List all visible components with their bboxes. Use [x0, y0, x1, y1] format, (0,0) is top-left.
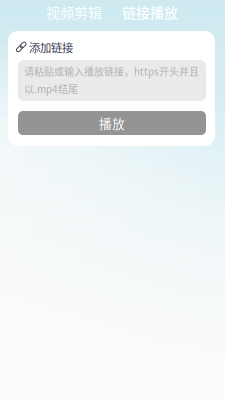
staticText: 添加链接	[29, 39, 73, 55]
staticText: 播放	[99, 114, 125, 132]
staticText: 视频剪辑	[46, 2, 102, 22]
button[interactable]: 播放	[18, 111, 206, 135]
staticText: 链接播放	[122, 2, 178, 22]
button[interactable]: 视频剪辑	[37, 2, 111, 22]
staticText: 请粘贴或输入播放链接，https开头并且以.mp4结尾	[24, 64, 199, 96]
button[interactable]: 链接播放	[113, 2, 187, 22]
